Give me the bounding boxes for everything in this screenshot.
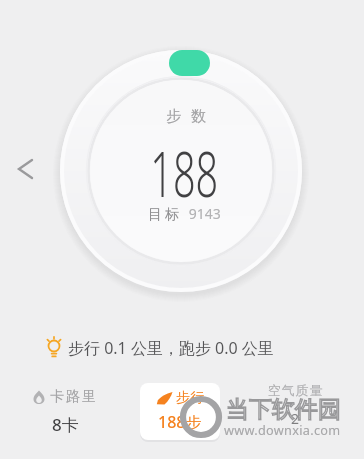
staticText: 当下软件园 — [226, 395, 341, 424]
staticText: 188步 — [158, 411, 202, 433]
button[interactable]: 步行 0.1 公里，跑步 0.0 公里 — [44, 336, 274, 360]
staticText: 8卡 — [52, 413, 79, 436]
staticText: 空气质量 — [268, 382, 324, 398]
button[interactable]: 卡路里 — [20, 388, 110, 436]
staticText: 188 — [150, 131, 219, 215]
staticText: 步行 0.1 公里，跑步 0.0 公里 — [68, 337, 274, 359]
staticText: 步数 — [161, 107, 211, 126]
staticText: www.downxia.com — [224, 421, 341, 438]
staticText: 卡路里 — [49, 388, 97, 406]
button[interactable]: 步行 — [140, 383, 220, 440]
button[interactable] — [8, 152, 38, 182]
button[interactable]: 空气质量 — [251, 382, 341, 398]
staticText: 步行 — [176, 389, 204, 407]
staticText: 2 — [291, 409, 300, 428]
staticText: 目标 9143 — [148, 204, 221, 223]
button[interactable] — [169, 50, 210, 76]
